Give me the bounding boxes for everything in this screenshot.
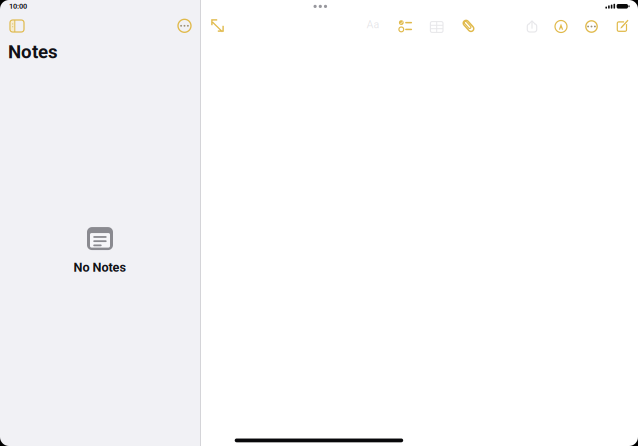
staticText: Notes xyxy=(8,41,58,63)
button[interactable]: More xyxy=(578,13,604,39)
staticText: 10:00 xyxy=(9,2,27,11)
button[interactable]: Expand xyxy=(204,12,230,38)
button[interactable]: More xyxy=(170,13,198,39)
staticText: Aa xyxy=(366,18,379,31)
button[interactable]: Attach File xyxy=(455,13,481,39)
staticText: No Notes xyxy=(73,260,126,275)
button[interactable]: Markup xyxy=(548,13,574,39)
button[interactable]: Hide Sidebar xyxy=(3,13,31,39)
button[interactable]: Table xyxy=(424,14,450,40)
button[interactable]: Checklist xyxy=(392,13,418,39)
button[interactable]: Share xyxy=(519,13,545,39)
button[interactable]: Format xyxy=(360,11,386,37)
button[interactable]: New Note xyxy=(610,13,636,39)
